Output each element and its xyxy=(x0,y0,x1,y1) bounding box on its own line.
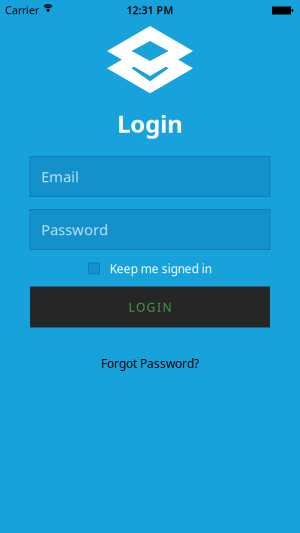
button[interactable]: LOGIN xyxy=(30,286,270,327)
staticText: Login xyxy=(117,108,183,139)
button[interactable]: Email xyxy=(30,156,270,196)
staticText: Email xyxy=(41,167,79,186)
staticText: Keep me signed in xyxy=(109,260,211,276)
staticText: Password xyxy=(41,220,108,239)
staticText: Forgot Password? xyxy=(101,355,199,371)
staticText: LOGIN xyxy=(128,299,171,315)
button[interactable]: Keep me signed in xyxy=(88,262,211,274)
button[interactable]: Password xyxy=(30,209,270,249)
button[interactable]: Forgot Password? xyxy=(101,355,199,371)
staticText: Carrier xyxy=(5,3,39,17)
staticText: 12:31 PM xyxy=(126,3,173,17)
